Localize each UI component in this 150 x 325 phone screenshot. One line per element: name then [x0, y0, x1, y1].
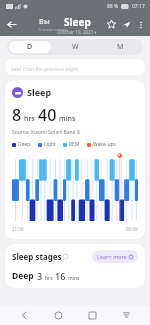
staticText: hrs: [24, 114, 35, 124]
button[interactable]: Home: [48, 305, 68, 325]
staticText: Light: [44, 141, 56, 148]
staticText: mins: [68, 275, 80, 282]
staticText: hrs: [45, 275, 53, 282]
staticText: Вы: [39, 17, 50, 27]
staticText: 07:17: [132, 3, 145, 10]
staticText: October 19, 2023 ▾: [57, 29, 97, 35]
staticText: Sleep: [64, 15, 91, 29]
button[interactable]: Back: [14, 305, 34, 325]
staticText: 21:56: [12, 226, 24, 232]
staticText: later than the previous night.: [11, 66, 80, 73]
staticText: REM: [69, 141, 80, 148]
staticText: 16: [55, 270, 66, 282]
button[interactable]: Share: [119, 17, 134, 32]
staticText: Learn more: [97, 253, 127, 260]
staticText: M: [117, 42, 124, 52]
button[interactable]: Recent apps: [82, 305, 102, 325]
button[interactable]: W: [55, 41, 96, 53]
staticText: 06:49: [126, 226, 138, 232]
staticText: Sleep: [27, 86, 52, 98]
staticText: Deep: [18, 141, 31, 148]
button[interactable]: later than the previous night.: [5, 59, 145, 75]
button[interactable]: Back: [3, 16, 20, 33]
staticText: mins: [59, 114, 76, 124]
button[interactable]: Favorite: [104, 17, 119, 32]
staticText: Source: Xiaomi Smart Band 8: [12, 129, 80, 136]
staticText: 40: [38, 104, 57, 126]
button[interactable]: M: [100, 41, 141, 53]
staticText: Deep: [12, 270, 34, 282]
button[interactable]: More options: [134, 18, 148, 32]
staticText: 8: [12, 104, 22, 126]
staticText: 5 минут назад: [39, 27, 67, 32]
button[interactable]: D: [9, 41, 51, 53]
button[interactable]: Learn more: [92, 250, 138, 263]
staticText: Wake-ups: [93, 141, 117, 148]
staticText: Sleep stages: [12, 251, 62, 262]
button[interactable]: Sleep: [5, 80, 145, 239]
button[interactable]: Sleep stages: [5, 244, 145, 288]
staticText: 88 %: [107, 3, 119, 10]
staticText: 3: [37, 270, 43, 282]
staticText: W: [72, 42, 79, 52]
button[interactable]: Keyboard: [116, 305, 136, 325]
staticText: D: [27, 42, 33, 52]
